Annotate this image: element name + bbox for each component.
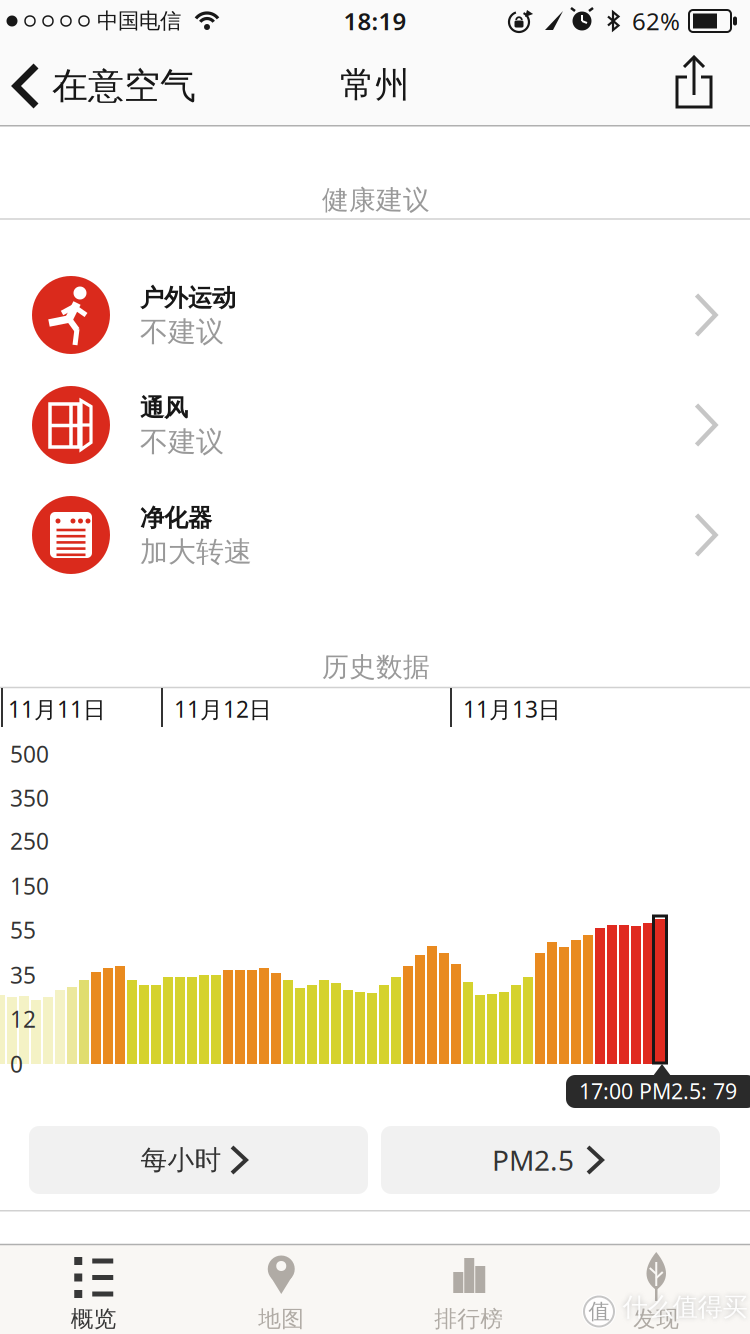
staticText: 什么值得买 — [622, 1291, 747, 1322]
staticText: 250 — [10, 826, 49, 856]
staticText: 排行榜 — [434, 1305, 503, 1333]
staticText: 地图 — [258, 1305, 304, 1333]
button[interactable]: 通风 — [0, 370, 750, 480]
staticText: 历史数据 — [322, 651, 430, 683]
button[interactable]: 分享 — [664, 51, 724, 115]
button[interactable]: 每小时 — [29, 1126, 368, 1194]
staticText: 在意空气 — [52, 64, 196, 108]
staticText: PM2.5 — [492, 1141, 574, 1179]
staticText: 户外运动 — [140, 283, 236, 313]
button[interactable]: 发现 — [610, 1244, 703, 1334]
staticText: 健康建议 — [322, 184, 430, 216]
staticText: 11月12日 — [174, 694, 272, 724]
staticText: 62% — [632, 5, 680, 37]
staticText: 净化器 — [140, 503, 212, 533]
staticText: 不建议 — [140, 425, 224, 459]
button[interactable]: 概览 — [47, 1244, 140, 1334]
staticText: 17:00 PM2.5: 79 — [579, 1077, 737, 1105]
staticText: 11月11日 — [8, 694, 106, 724]
staticText: 每小时 — [140, 1144, 221, 1176]
staticText: 35 — [10, 960, 36, 990]
staticText: 11月13日 — [463, 694, 561, 724]
staticText: 值 — [588, 1298, 609, 1325]
button[interactable]: 户外运动 — [0, 260, 750, 370]
button[interactable]: 排行榜 — [422, 1244, 515, 1334]
staticText: 中国电信 — [97, 8, 181, 34]
button[interactable]: 地图 — [235, 1244, 328, 1334]
staticText: 12 — [10, 1004, 36, 1034]
staticText: 不建议 — [140, 315, 224, 349]
staticText: 55 — [10, 915, 36, 945]
staticText: 150 — [10, 871, 49, 901]
staticText: 0 — [10, 1049, 23, 1079]
staticText: 350 — [10, 783, 49, 813]
staticText: 概览 — [71, 1305, 117, 1333]
button[interactable]: 净化器 — [0, 480, 750, 590]
button[interactable]: 返回 在意空气 — [2, 40, 212, 128]
staticText: 发现 — [633, 1305, 679, 1333]
staticText: 常州 — [340, 64, 410, 106]
staticText: 通风 — [140, 393, 188, 423]
staticText: 500 — [10, 739, 49, 769]
staticText: 加大转速 — [140, 535, 252, 569]
button[interactable]: PM2.5 — [381, 1126, 720, 1194]
staticText: 18:19 — [343, 5, 406, 37]
